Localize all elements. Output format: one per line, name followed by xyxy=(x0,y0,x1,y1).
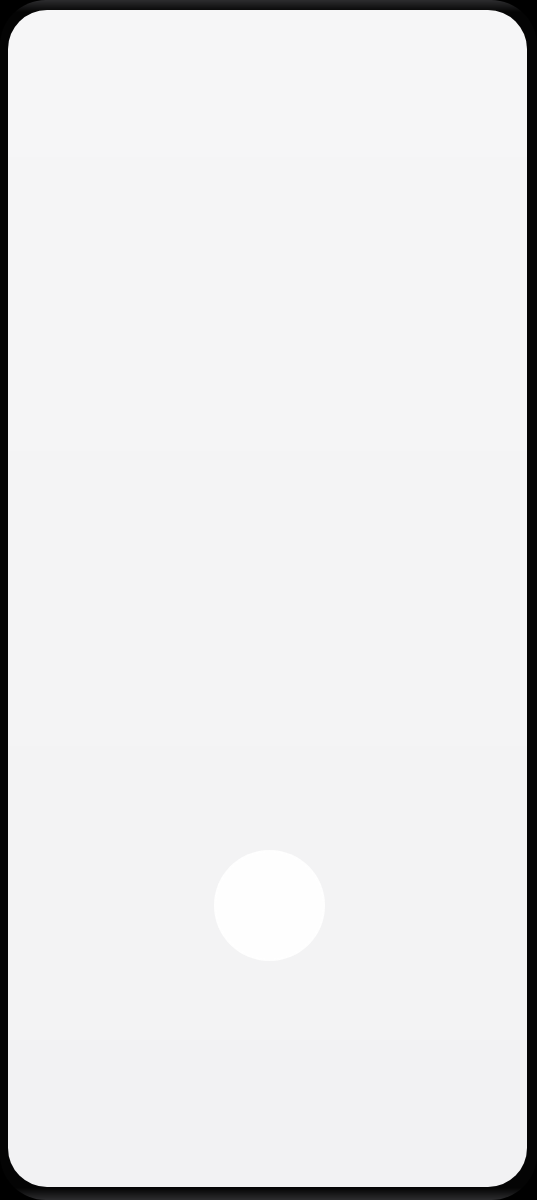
button[interactable]: Action xyxy=(214,850,325,961)
